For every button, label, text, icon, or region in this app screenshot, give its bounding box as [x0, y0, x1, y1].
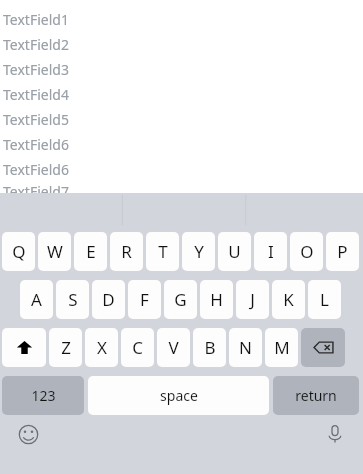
button[interactable]: L: [308, 280, 341, 319]
button[interactable]: J: [236, 280, 269, 319]
button[interactable]: space: [88, 376, 269, 415]
button[interactable]: N: [229, 328, 262, 367]
staticText: O: [300, 240, 314, 263]
staticText: F: [140, 288, 149, 311]
button[interactable]: O: [290, 232, 323, 271]
button[interactable]: TextField6: [0, 157, 363, 182]
staticText: T: [158, 240, 168, 263]
staticText: TextField7: [3, 182, 69, 193]
button[interactable]: X: [85, 328, 118, 367]
staticText: K: [283, 288, 294, 311]
staticText: U: [228, 240, 241, 263]
staticText: E: [86, 240, 96, 263]
button[interactable]: TextField1: [0, 7, 363, 32]
button[interactable]: G: [164, 280, 197, 319]
button[interactable]: S: [56, 280, 89, 319]
button[interactable]: Voice input: [320, 419, 350, 449]
button[interactable]: V: [157, 328, 190, 367]
staticText: TextField6: [3, 160, 69, 179]
button[interactable]: U: [218, 232, 251, 271]
staticText: M: [274, 336, 290, 359]
staticText: Q: [12, 240, 26, 263]
staticText: J: [250, 288, 255, 311]
staticText: 123: [31, 386, 56, 405]
staticText: TextField2: [3, 35, 69, 54]
staticText: G: [174, 288, 187, 311]
button[interactable]: R: [110, 232, 143, 271]
staticText: Y: [194, 240, 204, 263]
staticText: X: [97, 336, 107, 359]
button[interactable]: Y: [182, 232, 215, 271]
button[interactable]: H: [200, 280, 233, 319]
staticText: TextField4: [3, 85, 69, 104]
staticText: TextField1: [3, 10, 69, 29]
button[interactable]: TextField5: [0, 107, 363, 132]
staticText: S: [68, 288, 78, 311]
staticText: Z: [61, 336, 71, 359]
button[interactable]: TextField7: [0, 182, 363, 193]
staticText: space: [160, 386, 198, 405]
button[interactable]: 123: [2, 376, 84, 415]
button[interactable]: TextField2: [0, 32, 363, 57]
staticText: D: [102, 288, 115, 311]
staticText: R: [121, 240, 132, 263]
button[interactable]: P: [326, 232, 359, 271]
staticText: B: [204, 336, 216, 359]
button[interactable]: Emoji: [13, 419, 43, 449]
button[interactable]: return: [273, 376, 359, 415]
staticText: return: [295, 386, 337, 405]
staticText: TextField5: [3, 110, 69, 129]
staticText: L: [320, 288, 329, 311]
button[interactable]: Z: [49, 328, 82, 367]
button[interactable]: E: [74, 232, 107, 271]
staticText: W: [47, 240, 63, 263]
staticText: TextField3: [3, 60, 69, 79]
button[interactable]: T: [146, 232, 179, 271]
button[interactable]: TextField4: [0, 82, 363, 107]
staticText: H: [210, 288, 223, 311]
button[interactable]: TextField6: [0, 132, 363, 157]
staticText: C: [132, 336, 143, 359]
button[interactable]: I: [254, 232, 287, 271]
staticText: P: [337, 240, 348, 263]
button[interactable]: Q: [2, 232, 35, 271]
staticText: TextField6: [3, 135, 69, 154]
staticText: V: [168, 336, 179, 359]
button[interactable]: K: [272, 280, 305, 319]
button[interactable]: W: [38, 232, 71, 271]
staticText: A: [31, 288, 42, 311]
button[interactable]: M: [265, 328, 298, 367]
button[interactable]: Shift: [2, 328, 46, 367]
staticText: N: [239, 336, 252, 359]
button[interactable]: D: [92, 280, 125, 319]
button[interactable]: B: [193, 328, 226, 367]
button[interactable]: A: [20, 280, 53, 319]
button[interactable]: F: [128, 280, 161, 319]
button[interactable]: Backspace: [301, 328, 345, 367]
button[interactable]: C: [121, 328, 154, 367]
staticText: I: [268, 240, 274, 263]
button[interactable]: TextField3: [0, 57, 363, 82]
